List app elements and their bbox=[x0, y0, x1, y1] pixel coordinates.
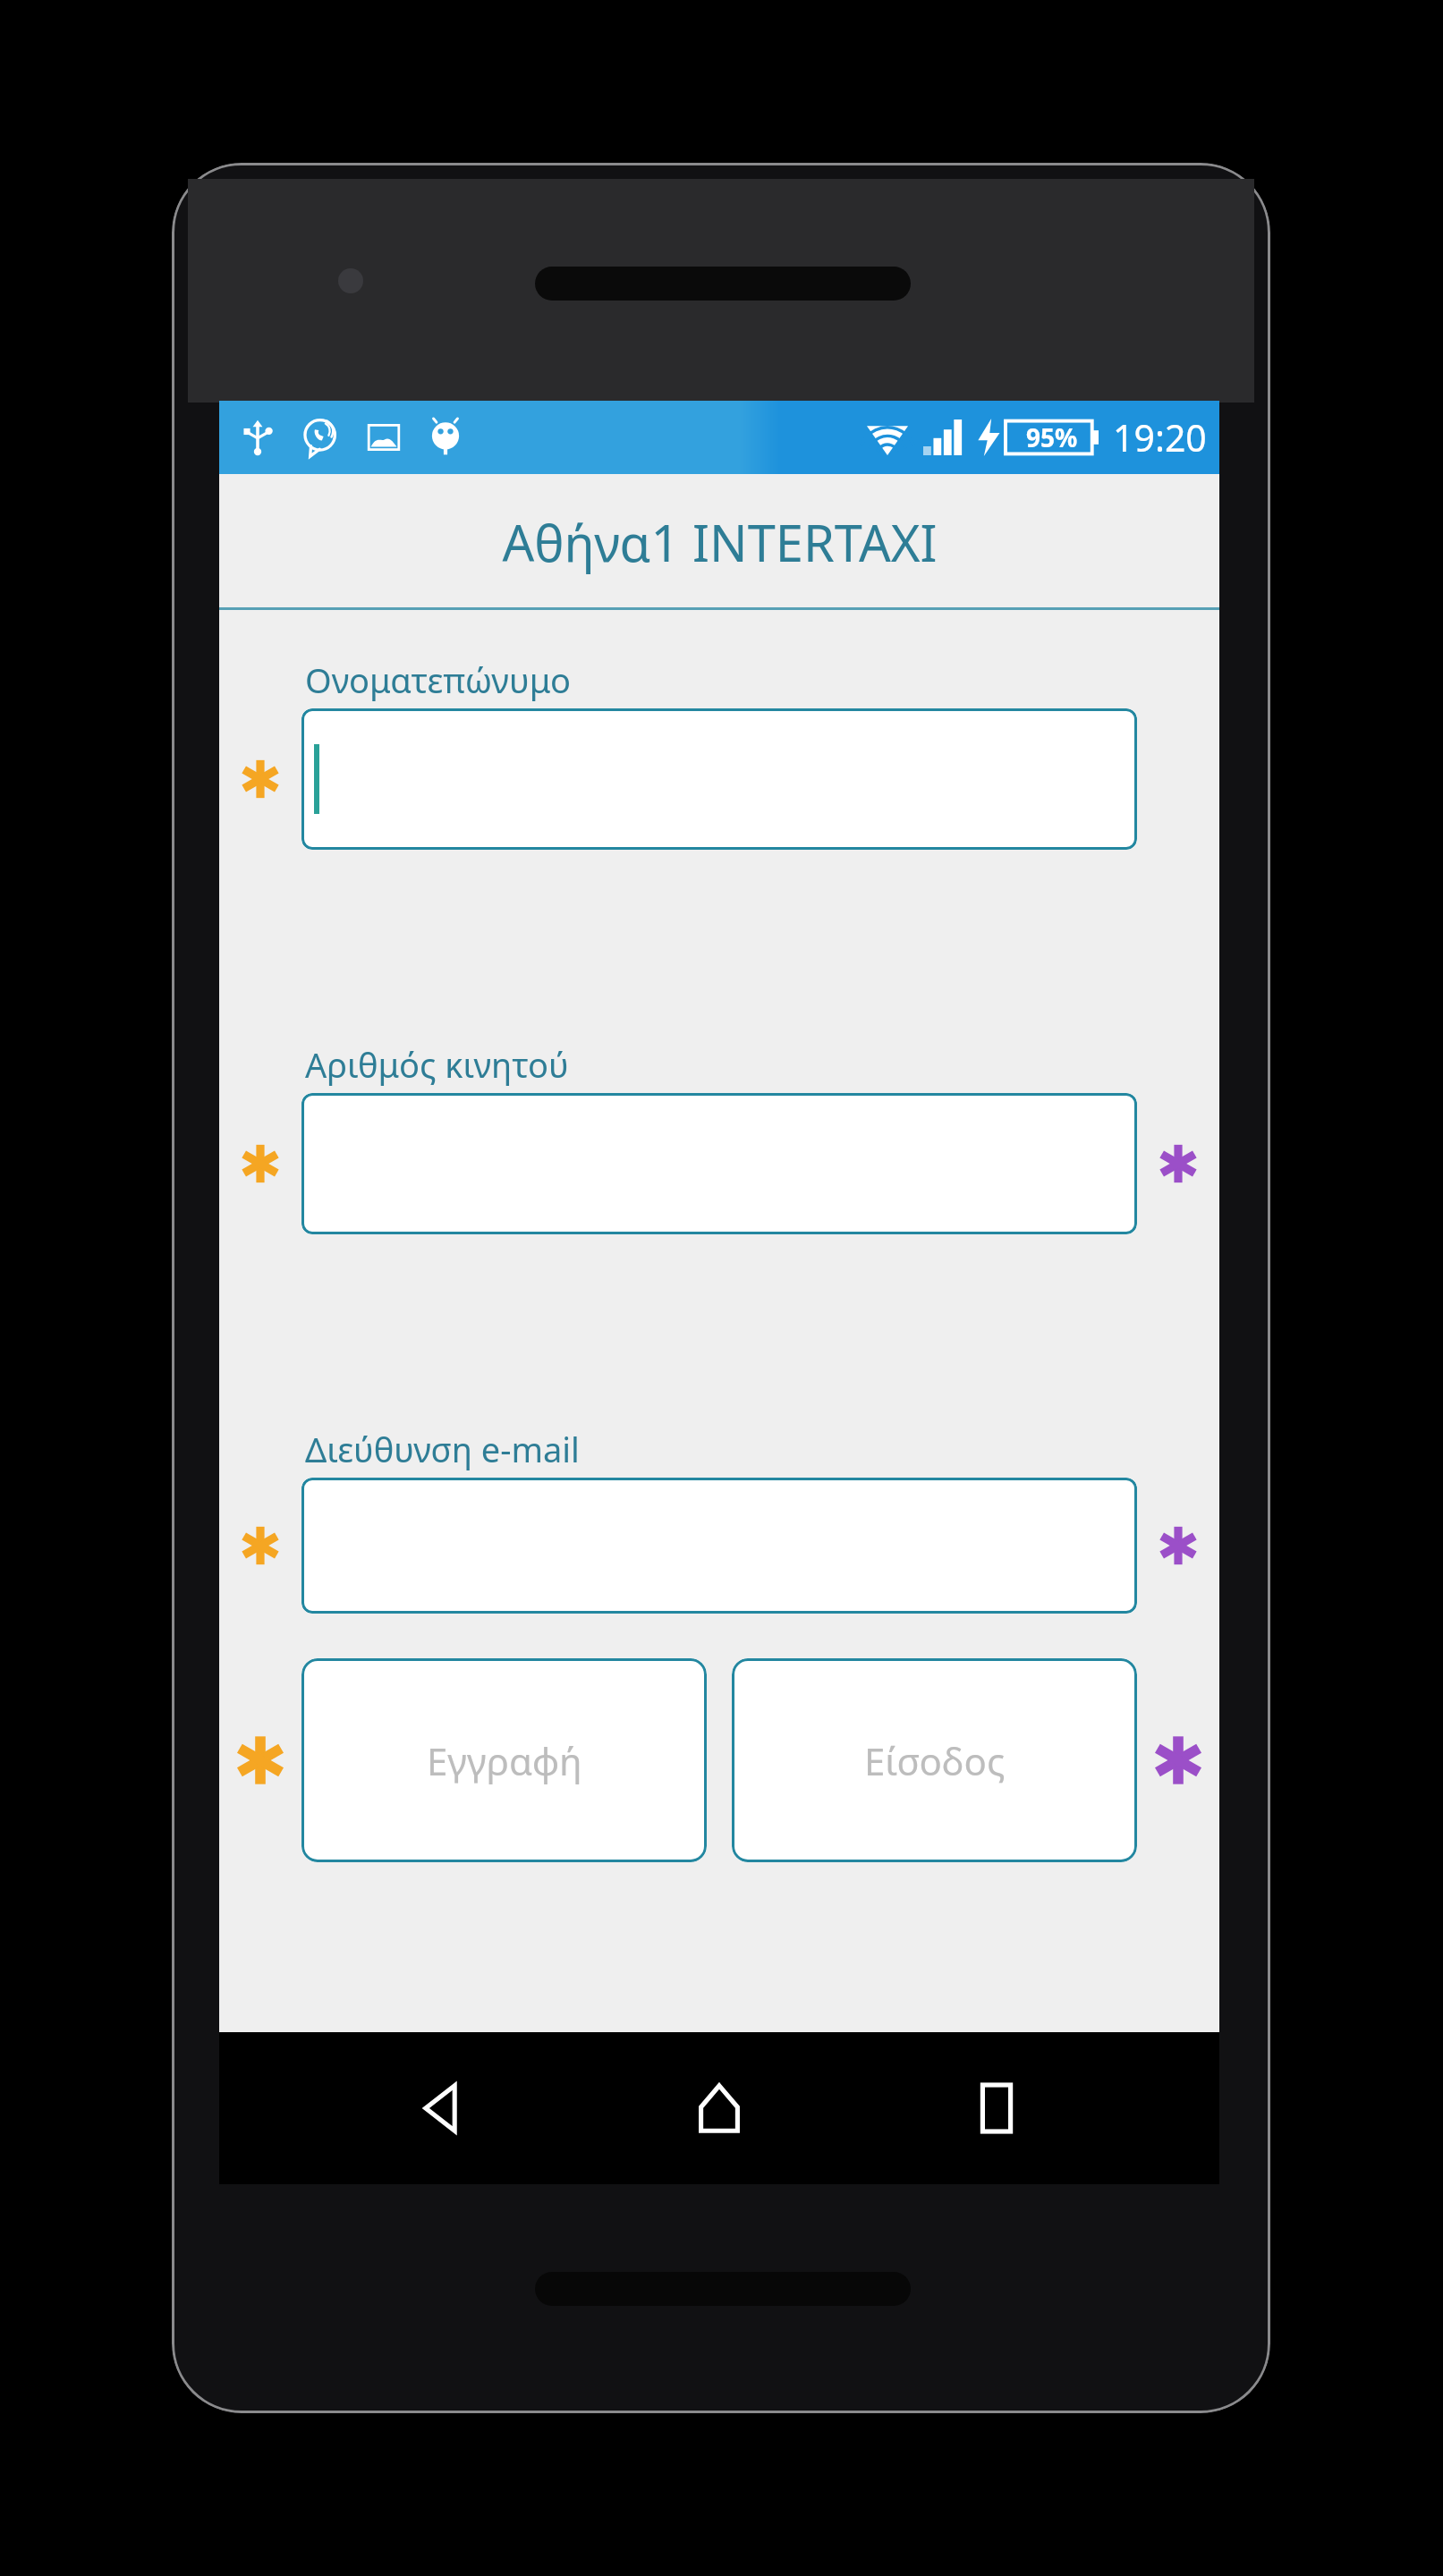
button[interactable] bbox=[301, 1478, 1137, 1614]
button[interactable]: Home bbox=[666, 2055, 773, 2162]
button[interactable] bbox=[301, 708, 1137, 850]
button[interactable]: Εγγραφή bbox=[301, 1658, 707, 1862]
staticText: Διεύθυνση e-mail bbox=[305, 1426, 580, 1472]
button[interactable] bbox=[301, 1093, 1137, 1234]
staticText: 19:20 bbox=[1113, 412, 1207, 462]
staticText: 95% bbox=[1026, 420, 1078, 454]
staticText: Αθήνα1 INTERTAXI bbox=[502, 508, 938, 576]
staticText: Ονοματεπώνυμο bbox=[305, 657, 572, 703]
staticText: Είσοδος bbox=[864, 1735, 1006, 1786]
staticText: Εγγραφή bbox=[427, 1735, 582, 1786]
button[interactable]: Recents bbox=[943, 2055, 1050, 2162]
button[interactable]: Είσοδος bbox=[732, 1658, 1137, 1862]
staticText: Αριθμός κινητού bbox=[305, 1041, 569, 1088]
button[interactable]: Back bbox=[389, 2055, 497, 2162]
